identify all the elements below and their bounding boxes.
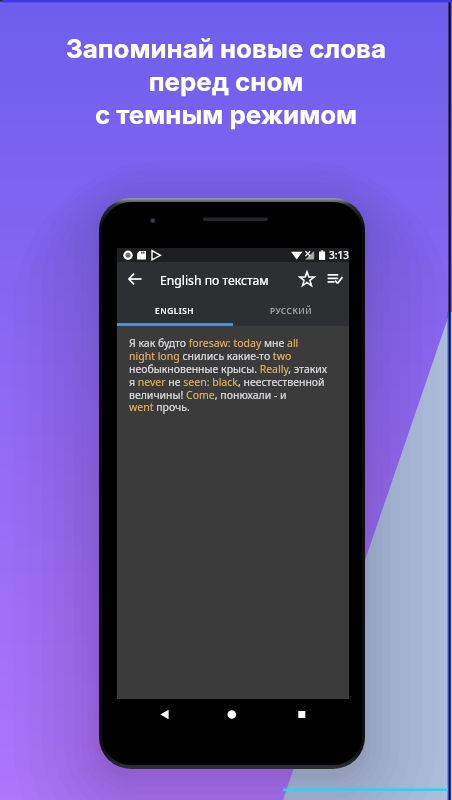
button[interactable]: ENGLISH — [117, 296, 233, 323]
staticText: night long снились какие-то two — [129, 349, 292, 363]
staticText: перед сном — [0, 66, 452, 97]
staticText: ENGLISH — [155, 305, 195, 316]
button[interactable]: Home — [218, 698, 246, 726]
staticText: English по текстам — [160, 272, 269, 289]
button[interactable]: РУССКИЙ — [233, 296, 349, 323]
staticText: необыкновенные крысы. Really, этаких — [129, 362, 328, 376]
button[interactable]: Add to favourites — [294, 266, 320, 292]
staticText: went прочь. — [129, 400, 190, 414]
button[interactable]: Back — [122, 266, 148, 292]
staticText: 3:13 — [329, 248, 349, 262]
button[interactable]: Add to list — [322, 266, 348, 292]
staticText: РУССКИЙ — [270, 305, 313, 316]
staticText: величины! Come, понюхали - и — [129, 388, 287, 402]
button[interactable]: Recent apps — [291, 698, 319, 726]
staticText: я never не seen: black, неестественной — [129, 375, 325, 389]
button[interactable]: Back — [145, 698, 173, 726]
staticText: с темным режимом — [0, 99, 452, 130]
staticText: Запоминай новые слова — [0, 33, 452, 64]
staticText: Я как будто foresaw: today мне all — [129, 336, 299, 350]
